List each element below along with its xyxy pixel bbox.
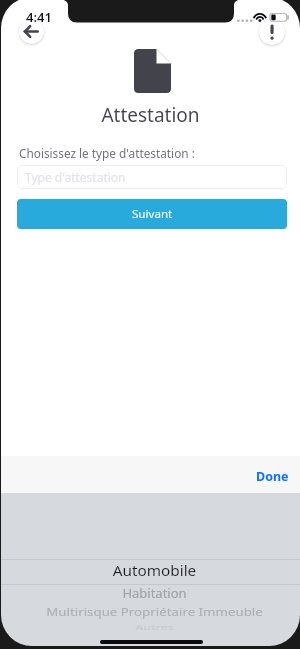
staticText: Automobile bbox=[5, 560, 300, 581]
staticText: Type d'attestation bbox=[25, 169, 126, 185]
button[interactable]: Suivant bbox=[17, 199, 287, 229]
staticText: Multirisque Propriétaire Immeuble bbox=[5, 606, 300, 619]
button[interactable]: Information bbox=[259, 19, 285, 45]
staticText: Autres bbox=[5, 623, 300, 631]
button[interactable]: Back bbox=[19, 19, 44, 44]
staticText: Habitation bbox=[5, 584, 300, 602]
staticText: Attestation bbox=[1, 102, 300, 128]
staticText: Choisissez le type d'attestation : bbox=[19, 145, 195, 161]
staticText: Suivant bbox=[132, 206, 173, 222]
staticText: Done bbox=[256, 468, 289, 485]
button[interactable]: Done bbox=[249, 462, 295, 490]
staticText: 4:41 bbox=[26, 8, 52, 26]
button[interactable]: Type d'attestation bbox=[17, 165, 287, 189]
